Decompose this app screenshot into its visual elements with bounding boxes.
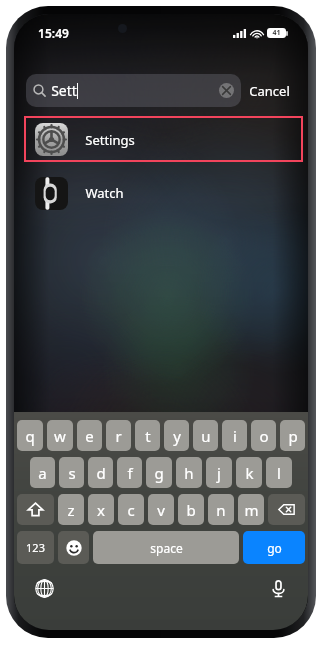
button[interactable]: 123	[17, 531, 54, 564]
button[interactable]: v	[148, 494, 174, 525]
staticText: 41	[272, 28, 281, 38]
staticText: m	[244, 500, 259, 520]
button[interactable]: Change keyboard language	[31, 575, 57, 601]
button[interactable]: Backspace	[268, 494, 305, 525]
staticText: go	[267, 540, 282, 556]
button[interactable]: t	[135, 420, 160, 451]
button[interactable]: Emoji	[58, 531, 89, 564]
staticText: i	[233, 426, 237, 446]
staticText: Watch	[85, 184, 124, 202]
staticText: a	[38, 463, 47, 483]
staticText: g	[154, 463, 164, 483]
button[interactable]: Dictate	[265, 575, 291, 601]
staticText: 15:49	[38, 25, 69, 41]
staticText: y	[173, 426, 181, 446]
button[interactable]: space	[93, 531, 239, 564]
staticText: u	[201, 426, 211, 446]
button[interactable]: b	[178, 494, 204, 525]
staticText: l	[277, 463, 281, 483]
button[interactable]: s	[59, 457, 84, 488]
button[interactable]: i	[222, 420, 247, 451]
button[interactable]: f	[117, 457, 142, 488]
staticText: c	[127, 500, 135, 520]
staticText: e	[85, 426, 94, 446]
staticText: d	[96, 463, 106, 483]
button[interactable]: p	[280, 420, 305, 451]
button[interactable]: y	[164, 420, 189, 451]
staticText: space	[150, 540, 183, 556]
button[interactable]: Shift	[17, 494, 54, 525]
staticText: j	[217, 463, 221, 483]
button[interactable]: d	[88, 457, 113, 488]
button[interactable]: r	[106, 420, 131, 451]
button[interactable]: a	[30, 457, 55, 488]
button[interactable]: h	[176, 457, 202, 488]
button[interactable]: u	[193, 420, 218, 451]
button[interactable]: j	[206, 457, 232, 488]
button[interactable]: n	[208, 494, 234, 525]
staticText: b	[186, 500, 196, 520]
staticText: 123	[26, 540, 45, 555]
button[interactable]: k	[236, 457, 262, 488]
button[interactable]: Watch	[14, 170, 308, 216]
button[interactable]: l	[266, 457, 292, 488]
staticText: f	[127, 463, 133, 483]
staticText: h	[184, 463, 194, 483]
button[interactable]: c	[118, 494, 144, 525]
staticText: w	[54, 426, 66, 446]
button[interactable]: Clear text	[219, 83, 234, 98]
staticText: x	[97, 500, 105, 520]
button[interactable]: g	[146, 457, 172, 488]
button[interactable]: Settings	[24, 116, 303, 162]
button[interactable]: Sett	[26, 74, 241, 107]
button[interactable]: z	[58, 494, 84, 525]
staticText: o	[259, 426, 269, 446]
button[interactable]: Cancel	[241, 76, 298, 106]
staticText: Cancel	[249, 82, 290, 100]
staticText: n	[216, 500, 226, 520]
staticText: Sett	[51, 81, 77, 100]
staticText: Settings	[85, 131, 135, 149]
button[interactable]: m	[238, 494, 264, 525]
staticText: t	[145, 426, 151, 446]
button[interactable]: o	[251, 420, 276, 451]
staticText: z	[67, 500, 75, 520]
staticText: s	[68, 463, 76, 483]
button[interactable]: e	[77, 420, 102, 451]
staticText: k	[245, 463, 254, 483]
staticText: r	[115, 426, 122, 446]
button[interactable]: q	[17, 420, 43, 451]
button[interactable]: x	[88, 494, 114, 525]
button[interactable]: w	[47, 420, 73, 451]
staticText: p	[288, 426, 298, 446]
staticText: v	[157, 500, 165, 520]
staticText: q	[25, 426, 35, 446]
button[interactable]: go	[243, 531, 305, 564]
